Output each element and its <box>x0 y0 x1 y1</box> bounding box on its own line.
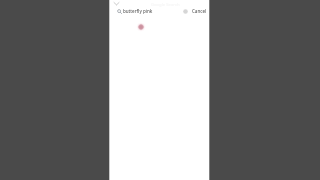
button[interactable]: Search <box>109 5 181 17</box>
staticText: butterfly pink <box>123 8 153 14</box>
other: Search <box>117 9 122 14</box>
button[interactable]: Voice search <box>182 8 189 15</box>
button[interactable]: Collapse <box>111 0 122 9</box>
staticText: Cancel <box>192 8 207 14</box>
button[interactable]: Cancel <box>192 8 207 14</box>
button[interactable]: Pink butterfly image result <box>135 21 147 33</box>
